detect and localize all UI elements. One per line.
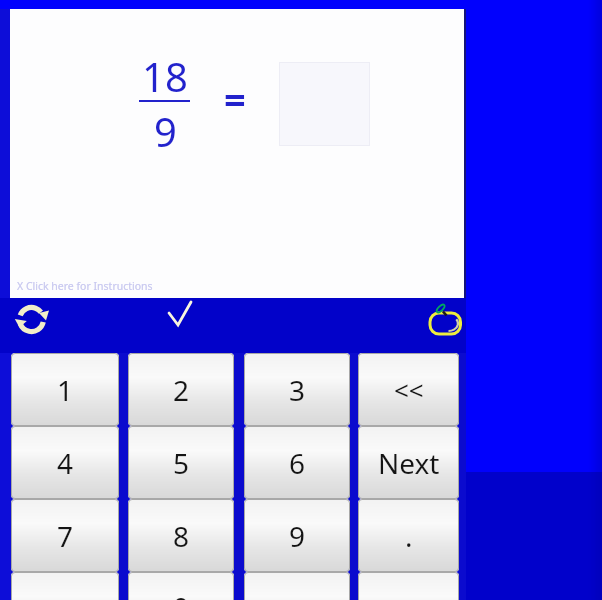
button[interactable]	[128, 572, 234, 600]
staticText: 9	[154, 104, 177, 148]
staticText: 4	[57, 444, 74, 482]
staticText: .	[405, 517, 413, 555]
staticText: 0	[173, 588, 190, 600]
staticText: <<	[394, 372, 424, 407]
button[interactable]: 4	[11, 426, 119, 499]
staticText: 6	[289, 444, 306, 482]
button[interactable]: 1	[11, 353, 119, 426]
staticText: 5	[173, 444, 190, 482]
staticText: 3	[289, 371, 306, 409]
button[interactable]	[11, 572, 119, 600]
button[interactable]	[244, 572, 350, 600]
button[interactable]: 5	[128, 426, 234, 499]
staticText: 18	[142, 49, 188, 93]
button[interactable]: 6	[244, 426, 350, 499]
staticText: =	[224, 73, 246, 117]
button[interactable]	[424, 296, 468, 342]
button[interactable]	[358, 572, 459, 600]
staticText: 2	[173, 371, 190, 409]
button[interactable]: 2	[128, 353, 234, 426]
staticText: Next	[378, 444, 440, 482]
button[interactable]: X Click here for Instructions	[17, 279, 153, 293]
staticText: 7	[57, 517, 74, 555]
staticText: 8	[173, 517, 190, 555]
staticText: X Click here for Instructions	[17, 279, 153, 293]
button[interactable]	[162, 296, 198, 332]
button[interactable]: 3	[244, 353, 350, 426]
staticText: 1	[57, 371, 74, 409]
button[interactable]	[8, 298, 60, 345]
button[interactable]: .	[358, 499, 459, 572]
staticText: 9	[289, 517, 306, 555]
button[interactable]: 7	[11, 499, 119, 572]
button[interactable]: 8	[128, 499, 234, 572]
button[interactable]: Next	[358, 426, 459, 499]
button[interactable]: 9	[244, 499, 350, 572]
button[interactable]: <<	[358, 353, 459, 426]
